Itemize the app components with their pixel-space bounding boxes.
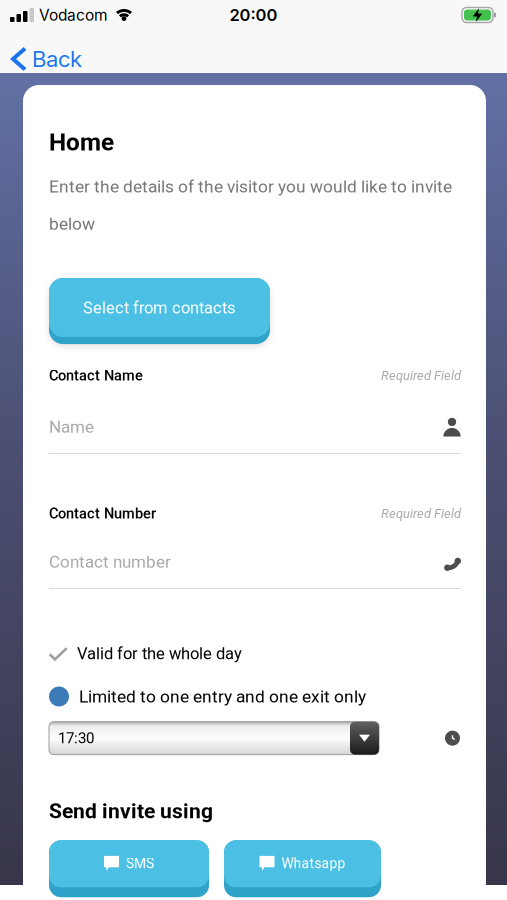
staticText: Contact number	[49, 552, 171, 572]
button[interactable]: Select time	[49, 722, 379, 755]
button[interactable]: SMS	[49, 840, 209, 897]
staticText: Enter the details of the visitor you wou…	[49, 176, 452, 197]
staticText: Whatsapp	[281, 855, 345, 872]
button[interactable]: Limited to one entry and one exit only	[49, 686, 366, 707]
staticText: Send invite using	[49, 799, 213, 823]
staticText: Contact Number	[49, 505, 156, 522]
staticText: Home	[49, 128, 114, 156]
staticText: Required Field	[381, 506, 461, 521]
staticText: 17:30	[58, 729, 94, 747]
staticText: Back	[32, 46, 82, 72]
staticText: Vodacom	[39, 6, 108, 24]
staticText: below	[49, 214, 95, 234]
button[interactable]: Back	[0, 46, 82, 72]
staticText: 20:00	[229, 5, 277, 25]
staticText: Name	[49, 417, 94, 437]
button[interactable]: Select from contacts	[49, 278, 270, 344]
staticText: SMS	[126, 855, 154, 872]
staticText: Limited to one entry and one exit only	[79, 686, 366, 707]
staticText: Select from contacts	[83, 298, 236, 317]
staticText: Required Field	[381, 368, 461, 383]
button[interactable]: Valid for the whole day	[49, 644, 242, 663]
button[interactable]: Whatsapp	[224, 840, 381, 897]
staticText: Contact Name	[49, 367, 143, 384]
staticText: Valid for the whole day	[77, 644, 242, 663]
